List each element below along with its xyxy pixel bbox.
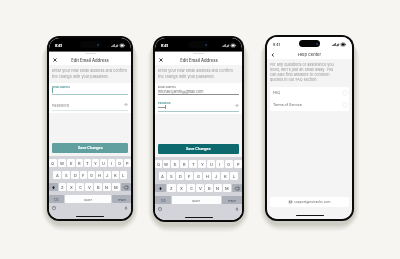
button[interactable]: Q bbox=[155, 160, 162, 168]
button[interactable]: X bbox=[177, 184, 186, 192]
button[interactable]: Save Changes bbox=[158, 144, 239, 154]
staticText: O bbox=[118, 161, 122, 166]
button[interactable]: F bbox=[185, 172, 193, 180]
button[interactable]: P bbox=[234, 160, 242, 168]
button[interactable]: A bbox=[53, 171, 61, 179]
button[interactable]: 123 bbox=[155, 196, 171, 204]
button[interactable]: D bbox=[176, 172, 184, 180]
staticText: 9:41 bbox=[273, 43, 280, 47]
button[interactable]: C bbox=[187, 184, 195, 192]
staticText: U bbox=[102, 161, 105, 166]
staticText: support@nutracks.com bbox=[294, 200, 331, 204]
button[interactable]: Shift bbox=[155, 184, 166, 192]
button[interactable]: support@nutracks.com bbox=[270, 197, 349, 207]
button[interactable]: Terms of Service bbox=[270, 99, 349, 111]
button[interactable]: O bbox=[225, 160, 233, 168]
button[interactable]: Q bbox=[49, 159, 57, 167]
button[interactable]: Y bbox=[92, 159, 99, 167]
button[interactable]: O bbox=[116, 159, 123, 167]
staticText: U bbox=[210, 162, 213, 167]
staticText: O bbox=[227, 162, 231, 167]
button[interactable]: I bbox=[108, 159, 115, 167]
button[interactable]: Close bbox=[52, 57, 58, 63]
staticText: D bbox=[179, 174, 182, 179]
button[interactable]: T bbox=[84, 159, 91, 167]
button[interactable]: V bbox=[196, 184, 204, 192]
button[interactable]: Backspace bbox=[232, 184, 242, 192]
staticText: Email Address bbox=[52, 85, 70, 88]
button[interactable]: R bbox=[76, 159, 83, 167]
button[interactable]: R bbox=[180, 160, 188, 168]
staticText: P bbox=[237, 162, 240, 167]
button[interactable]: Back bbox=[270, 52, 276, 58]
button[interactable]: S bbox=[62, 171, 70, 179]
button[interactable]: B bbox=[94, 183, 102, 191]
staticText: L bbox=[233, 174, 236, 179]
button[interactable]: S bbox=[167, 172, 175, 180]
button[interactable]: T bbox=[189, 160, 197, 168]
button[interactable]: A bbox=[159, 172, 166, 180]
button[interactable]: Y bbox=[198, 160, 206, 168]
button[interactable]: space bbox=[65, 195, 111, 203]
button[interactable]: Save Changes bbox=[52, 143, 128, 153]
button[interactable]: M bbox=[223, 184, 231, 192]
staticText: W bbox=[60, 161, 65, 166]
button[interactable]: G bbox=[88, 171, 95, 179]
button[interactable]: Z bbox=[59, 183, 66, 191]
staticText: A bbox=[161, 174, 164, 179]
staticText: X bbox=[180, 186, 183, 191]
staticText: W bbox=[164, 162, 169, 167]
staticText: B bbox=[208, 186, 211, 191]
staticText: I bbox=[219, 162, 221, 167]
button[interactable]: U bbox=[100, 159, 107, 167]
button[interactable]: space bbox=[172, 196, 221, 204]
button[interactable]: F bbox=[80, 171, 87, 179]
staticText: V bbox=[199, 186, 202, 191]
staticText: Z bbox=[61, 185, 64, 190]
button[interactable]: H bbox=[96, 171, 103, 179]
staticText: C bbox=[190, 186, 193, 191]
button[interactable]: W bbox=[58, 159, 66, 167]
button[interactable]: B bbox=[205, 184, 213, 192]
button[interactable]: N bbox=[103, 183, 111, 191]
staticText: 123 bbox=[54, 198, 59, 201]
button[interactable]: M bbox=[112, 183, 120, 191]
staticText: M bbox=[225, 186, 229, 191]
button[interactable]: return bbox=[222, 196, 242, 204]
button[interactable]: I bbox=[216, 160, 224, 168]
button[interactable]: V bbox=[85, 183, 93, 191]
button[interactable]: E bbox=[67, 159, 75, 167]
button[interactable]: Close bbox=[158, 57, 164, 63]
staticText: For any questions or assistance you need… bbox=[270, 62, 340, 82]
button[interactable]: 123 bbox=[49, 195, 64, 203]
staticText: Password bbox=[52, 103, 70, 107]
button[interactable]: C bbox=[76, 183, 84, 191]
staticText: Z bbox=[170, 186, 173, 191]
button[interactable]: Backspace bbox=[121, 183, 131, 191]
staticText: S bbox=[170, 174, 173, 179]
staticText: space bbox=[84, 198, 93, 201]
staticText: Enter your new email address and confirm… bbox=[158, 68, 234, 79]
button[interactable]: E bbox=[171, 160, 179, 168]
button[interactable]: L bbox=[230, 172, 238, 180]
button[interactable]: Shift bbox=[49, 183, 58, 191]
button[interactable]: W bbox=[163, 160, 170, 168]
button[interactable]: L bbox=[120, 171, 127, 179]
button[interactable]: return bbox=[112, 195, 131, 203]
button[interactable]: X bbox=[67, 183, 75, 191]
button[interactable]: D bbox=[71, 171, 79, 179]
button[interactable]: K bbox=[112, 171, 119, 179]
button[interactable]: U bbox=[207, 160, 215, 168]
staticText: Email Address bbox=[158, 85, 176, 88]
staticText: Y bbox=[201, 162, 204, 167]
button[interactable]: J bbox=[104, 171, 111, 179]
button[interactable]: G bbox=[194, 172, 202, 180]
staticText: N bbox=[105, 185, 109, 190]
button[interactable]: J bbox=[212, 172, 220, 180]
button[interactable]: FAQ bbox=[270, 87, 349, 99]
button[interactable]: N bbox=[214, 184, 222, 192]
button[interactable]: K bbox=[221, 172, 229, 180]
button[interactable]: P bbox=[124, 159, 131, 167]
button[interactable]: Z bbox=[167, 184, 176, 192]
button[interactable]: H bbox=[203, 172, 211, 180]
